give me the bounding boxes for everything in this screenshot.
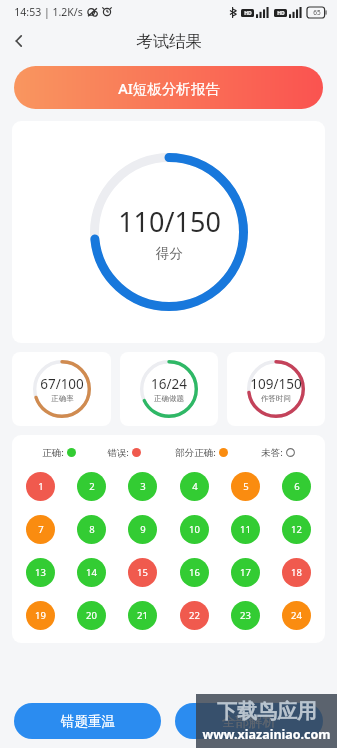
button[interactable]: 2 xyxy=(77,472,106,501)
button[interactable]: 24 xyxy=(282,601,311,630)
staticText: 18 xyxy=(291,566,302,579)
button[interactable]: 13 xyxy=(26,558,55,587)
button[interactable]: 20 xyxy=(77,601,106,630)
staticText: 10 xyxy=(189,523,200,536)
staticText: 21 xyxy=(137,609,148,622)
button[interactable]: 19 xyxy=(26,601,55,630)
staticText: 错误: xyxy=(107,446,129,459)
staticText: 8 xyxy=(89,523,95,536)
staticText: 部分正确: xyxy=(175,446,216,459)
staticText: 正确: xyxy=(42,446,64,459)
staticText: 65 xyxy=(313,8,321,17)
button[interactable]: AI短板分析报告 xyxy=(14,66,323,109)
staticText: 17 xyxy=(240,566,251,579)
button[interactable]: 全部解析 xyxy=(175,703,323,739)
staticText: HD xyxy=(244,10,252,17)
staticText: 错题重温 xyxy=(61,713,115,730)
staticText: 12 xyxy=(291,523,302,536)
staticText: 7 xyxy=(38,523,44,536)
button[interactable]: 67/100 xyxy=(12,352,111,426)
staticText: 4 xyxy=(192,480,198,493)
staticText: 16 xyxy=(189,566,200,579)
staticText: 19 xyxy=(35,609,46,622)
staticText: 67/100 xyxy=(40,375,84,393)
button[interactable]: 12 xyxy=(282,515,311,544)
button[interactable]: 1 xyxy=(26,472,55,501)
button[interactable]: 错题重温 xyxy=(14,703,161,739)
staticText: 考试结果 xyxy=(136,31,202,52)
button[interactable]: 10 xyxy=(180,515,209,544)
staticText: 16/24 xyxy=(151,375,187,393)
staticText: 未答: xyxy=(261,446,283,459)
staticText: 20 xyxy=(86,609,97,622)
staticText: HD xyxy=(277,10,285,17)
staticText: 24 xyxy=(291,609,302,622)
staticText: 3 xyxy=(140,480,146,493)
staticText: www.xiazainiao.com xyxy=(202,726,331,743)
staticText: 14 xyxy=(86,566,97,579)
button[interactable]: 16 xyxy=(180,558,209,587)
staticText: 22 xyxy=(189,609,200,622)
button[interactable]: 22 xyxy=(180,601,209,630)
staticText: 正确做题 xyxy=(154,394,184,403)
button[interactable]: 9 xyxy=(128,515,157,544)
staticText: 5 xyxy=(243,480,249,493)
button[interactable]: 8 xyxy=(77,515,106,544)
staticText: 全部解析 xyxy=(222,713,276,730)
staticText: 1 xyxy=(38,480,44,493)
staticText: 9 xyxy=(140,523,146,536)
button[interactable]: 5 xyxy=(231,472,260,501)
button[interactable]: 21 xyxy=(128,601,157,630)
staticText: 23 xyxy=(240,609,251,622)
button[interactable]: 109/150 xyxy=(227,352,325,426)
button[interactable]: 18 xyxy=(282,558,311,587)
staticText: 13 xyxy=(35,566,46,579)
button[interactable]: 3 xyxy=(128,472,157,501)
staticText: 2 xyxy=(89,480,95,493)
staticText: 109/150 xyxy=(250,375,302,393)
button[interactable]: 4 xyxy=(180,472,209,501)
staticText: 得分 xyxy=(156,245,183,262)
button[interactable]: Back xyxy=(0,24,38,58)
staticText: 下载鸟应用 xyxy=(217,699,317,724)
button[interactable]: 14 xyxy=(77,558,106,587)
staticText: 110/150 xyxy=(118,203,221,240)
staticText: 15 xyxy=(137,566,148,579)
button[interactable]: 23 xyxy=(231,601,260,630)
button[interactable]: 15 xyxy=(128,558,157,587)
button[interactable]: 17 xyxy=(231,558,260,587)
button[interactable]: 11 xyxy=(231,515,260,544)
staticText: 11 xyxy=(240,523,251,536)
staticText: 正确率 xyxy=(51,394,74,403)
staticText: 6 xyxy=(294,480,300,493)
button[interactable]: 6 xyxy=(282,472,311,501)
button[interactable]: 7 xyxy=(26,515,55,544)
staticText: AI短板分析报告 xyxy=(118,78,220,98)
staticText: 14:53 | 1.2K/s xyxy=(14,5,83,19)
staticText: 作答时间 xyxy=(261,394,291,403)
button[interactable]: 16/24 xyxy=(120,352,218,426)
